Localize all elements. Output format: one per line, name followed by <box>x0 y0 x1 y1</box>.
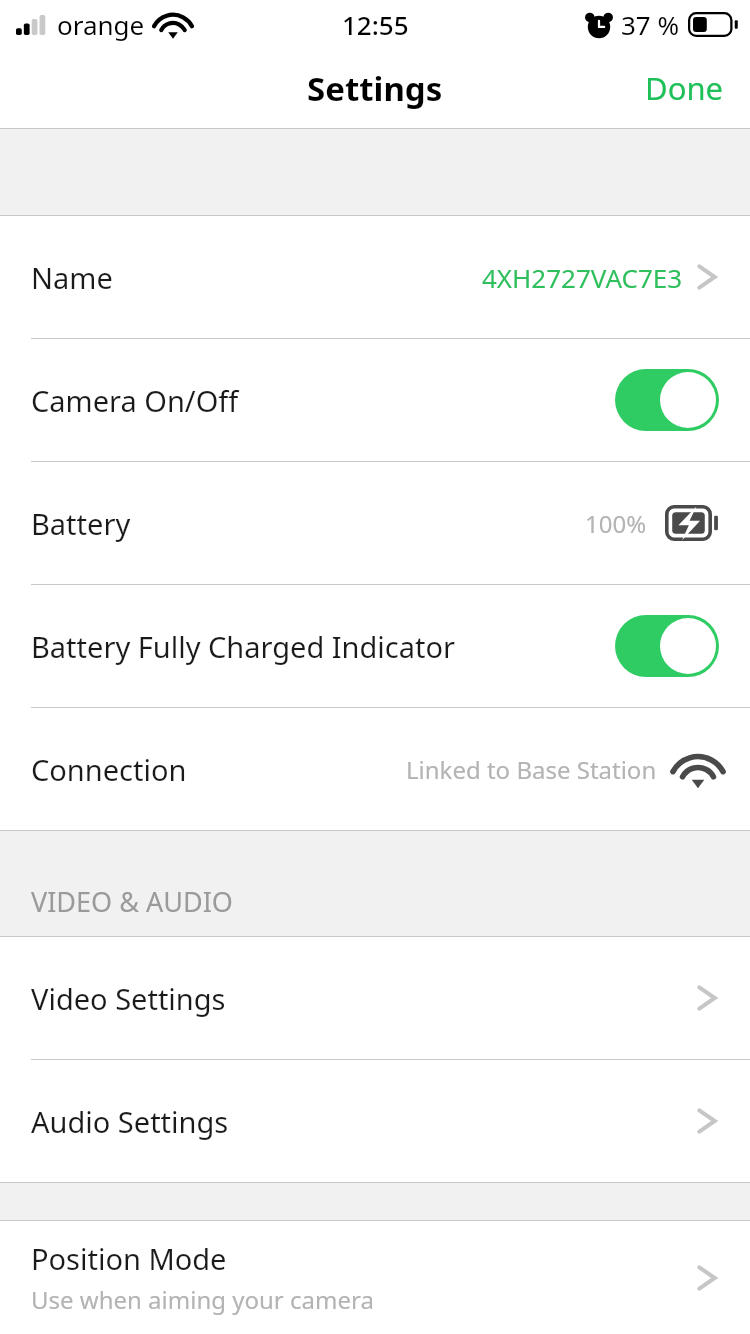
staticText: Position Mode <box>31 1239 227 1278</box>
staticText: Video Settings <box>31 979 226 1018</box>
staticText: 4XH2727VAC7E3 <box>482 260 683 295</box>
button[interactable]: Position Mode <box>0 1221 750 1334</box>
button[interactable]: Connection <box>0 708 750 830</box>
staticText: 12:55 <box>342 7 409 42</box>
staticText: 100% <box>585 507 647 540</box>
staticText: Camera On/Off <box>31 381 239 420</box>
staticText: Linked to Base Station <box>406 753 657 786</box>
button[interactable]: Battery <box>0 462 750 584</box>
staticText: orange <box>57 7 145 42</box>
button[interactable]: Battery Fully Charged Indicator <box>0 585 750 707</box>
staticText: Battery <box>31 504 131 543</box>
button[interactable]: Toggle <box>615 369 719 431</box>
staticText: 37 % <box>621 7 680 42</box>
staticText: VIDEO & AUDIO <box>31 883 233 920</box>
staticText: Settings <box>307 66 443 111</box>
button[interactable]: Camera On/Off <box>0 339 750 461</box>
staticText: Use when aiming your camera <box>31 1283 374 1316</box>
staticText: Done <box>645 67 724 109</box>
staticText: Battery Fully Charged Indicator <box>31 627 456 666</box>
button[interactable]: Name <box>0 216 750 338</box>
button[interactable]: Toggle <box>615 615 719 677</box>
button[interactable]: Video Settings <box>0 937 750 1059</box>
button[interactable]: Audio Settings <box>0 1060 750 1182</box>
staticText: Name <box>31 258 113 297</box>
staticText: Audio Settings <box>31 1102 229 1141</box>
button[interactable]: Done <box>619 55 750 121</box>
staticText: Connection <box>31 750 187 789</box>
